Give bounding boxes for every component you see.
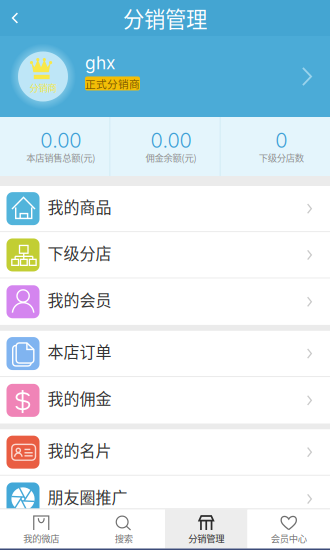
staticText: 我的商品 [47,195,111,218]
button[interactable]: 朋友圈推广 [0,476,330,522]
staticText: 本店销售总额(元) [26,151,95,164]
staticText: 我的微店 [23,531,59,545]
button[interactable]: 我的会员 [0,279,330,325]
button[interactable]: 分销商 [0,36,330,117]
staticText: 我的佣金 [47,386,111,409]
button[interactable]: 分销管理 [165,509,247,548]
button[interactable]: 我的微店 [0,509,82,548]
button[interactable]: 本店订单 [0,331,330,377]
button[interactable]: 我的名片 [0,429,330,476]
staticText: 朋友圈推广 [47,485,127,508]
button[interactable]: 下级分店 [0,232,330,279]
button[interactable]: 会员中心 [247,509,330,548]
staticText: 正式分销商 [85,76,140,91]
staticText: 0.00 [150,128,191,153]
staticText: 我的名片 [47,438,111,461]
staticText: ghx [85,52,115,73]
staticText: 佣金余额(元) [145,151,196,164]
staticText: 搜索 [115,531,133,545]
button[interactable]: 我的佣金 [0,377,330,423]
staticText: 0 [275,128,287,153]
button[interactable]: Back [0,0,30,36]
staticText: 下级分店 [47,241,111,264]
staticText: 会员中心 [271,531,307,545]
staticText: 下级分店数 [259,151,304,164]
staticText: 分销管理 [123,3,207,33]
staticText: 0.00 [40,128,81,153]
staticText: 分销管理 [188,531,224,545]
staticText: 分销商 [29,81,56,94]
staticText: 本店订单 [47,339,111,363]
button[interactable]: 搜索 [82,509,165,548]
button[interactable]: 我的商品 [0,186,330,232]
staticText: 我的会员 [47,288,111,311]
